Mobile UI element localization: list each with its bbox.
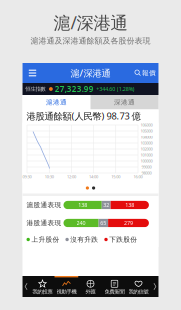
staticText: 138 xyxy=(78,201,87,209)
button[interactable]: 深港通 xyxy=(90,95,158,109)
staticText: 視動手機 xyxy=(56,288,76,295)
staticText: 外匯 xyxy=(85,288,95,295)
button[interactable]: Forward xyxy=(150,276,158,297)
staticText: 恒生指數 xyxy=(25,86,45,92)
staticText: 滬港通 xyxy=(46,98,67,106)
staticText: 138 xyxy=(125,201,134,209)
button[interactable]: 視動手機 xyxy=(54,276,78,297)
staticText: 15:00 xyxy=(111,174,120,179)
staticText: 106000 xyxy=(140,122,152,128)
staticText: 報價 xyxy=(142,69,156,77)
staticText: 港股通餘額(人民幣) 98.73 億 xyxy=(26,110,140,122)
staticText: 102000 xyxy=(140,146,152,152)
button[interactable]: 外匯 xyxy=(78,276,102,297)
staticText: 滬股通表現 xyxy=(26,201,61,209)
staticText: 我的信號 xyxy=(128,288,148,295)
button[interactable]: 我的投票 xyxy=(30,276,54,297)
staticText: 16:00 xyxy=(133,174,142,179)
staticText: 99000 xyxy=(141,164,151,170)
staticText: 240 xyxy=(76,219,85,227)
staticText: 65 xyxy=(100,219,106,227)
staticText: 滬/深港通 xyxy=(53,11,127,34)
button[interactable]: 免費新聞 xyxy=(102,276,126,297)
staticText: 27,323.99 xyxy=(55,84,94,94)
button[interactable]: 報價 xyxy=(132,63,158,83)
staticText: 10:30 xyxy=(45,174,54,179)
staticText: 免費新聞 xyxy=(104,288,124,295)
staticText: 105000 xyxy=(140,128,152,134)
button[interactable]: 滬港通 xyxy=(22,95,90,109)
staticText: 279 xyxy=(124,219,133,227)
staticText: 滬港通及深港通餘額及各股份表現 xyxy=(30,36,150,46)
staticText: +344.60 xyxy=(96,85,115,93)
button[interactable]: 我的信號 xyxy=(126,276,150,297)
staticText: 下跌股份 xyxy=(109,235,137,244)
staticText: 14:00 xyxy=(89,174,98,179)
staticText: 上升股份 xyxy=(31,235,59,244)
staticText: 09:30 xyxy=(22,174,31,179)
staticText: 我的投票 xyxy=(32,288,52,295)
staticText: 98000 xyxy=(141,170,151,176)
staticText: 12:00 xyxy=(67,174,76,179)
staticText: 32 xyxy=(103,201,109,209)
staticText: 104000 xyxy=(140,134,152,140)
staticText: 沒有升跌 xyxy=(70,235,98,244)
staticText: 深港通 xyxy=(114,98,135,106)
staticText: 滬/深港通 xyxy=(70,67,110,79)
staticText: 100000 xyxy=(140,158,152,164)
button[interactable]: Back xyxy=(22,276,30,297)
staticText: 101000 xyxy=(140,152,152,158)
staticText: 103000 xyxy=(140,140,152,146)
staticText: 港股通表現 xyxy=(26,219,61,227)
staticText: (1.28%) xyxy=(117,85,135,93)
button[interactable]: Menu xyxy=(22,63,42,83)
